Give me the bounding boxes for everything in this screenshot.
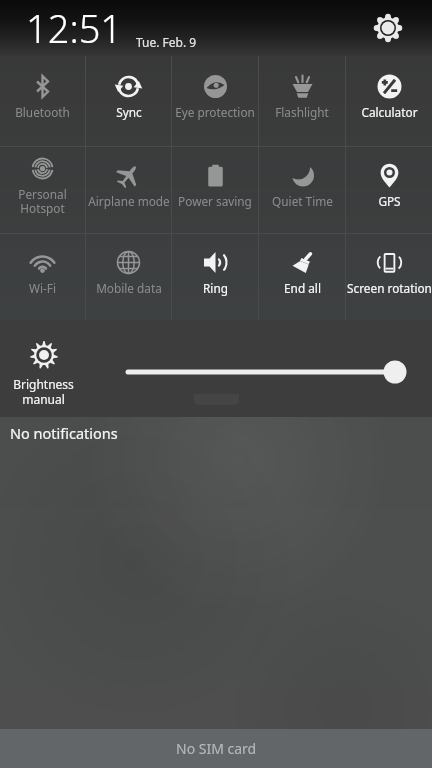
button[interactable]: Sync [86, 56, 171, 146]
button[interactable]: Settings [366, 6, 410, 50]
staticText: Power saving [178, 193, 252, 209]
staticText: Quiet Time [272, 193, 333, 209]
button[interactable]: Eye protection [172, 56, 258, 146]
staticText: Flashlight [275, 104, 329, 120]
staticText: Screen rotation [347, 280, 432, 296]
button[interactable]: Bluetooth [0, 56, 85, 146]
staticText: Airplane mode [88, 193, 170, 209]
staticText: Mobile data [96, 280, 162, 296]
staticText: Sync [116, 104, 142, 120]
button[interactable]: Flashlight [259, 56, 345, 146]
staticText: Ring [203, 280, 228, 296]
staticText: Tue. Feb. 9 [136, 34, 197, 50]
button[interactable]: Power saving [172, 147, 258, 233]
button[interactable]: Ring [172, 234, 258, 320]
button[interactable]: Wi-Fi [0, 234, 85, 320]
button[interactable]: Brightness slider [110, 358, 410, 386]
staticText: Brightness manual [13, 376, 74, 407]
button[interactable]: Mobile data [86, 234, 171, 320]
staticText: Calculator [361, 104, 418, 120]
button[interactable]: End all [259, 234, 345, 320]
button[interactable]: GPS [346, 147, 432, 233]
staticText: Wi-Fi [29, 280, 56, 296]
staticText: GPS [378, 193, 401, 209]
staticText: End all [284, 280, 321, 296]
button[interactable]: Screen rotation [346, 234, 432, 320]
button[interactable]: Brightness manual [8, 341, 79, 407]
staticText: Personal Hotspot [18, 186, 67, 216]
staticText: Eye protection [175, 104, 255, 120]
button[interactable]: Airplane mode [86, 147, 171, 233]
staticText: No notifications [10, 423, 118, 443]
staticText: No SIM card [176, 739, 257, 758]
button[interactable]: Personal Hotspot [0, 147, 85, 233]
staticText: Bluetooth [15, 104, 70, 120]
staticText: 12:51 [26, 2, 123, 54]
button[interactable]: Quiet Time [259, 147, 345, 233]
button[interactable]: Calculator [346, 56, 432, 146]
